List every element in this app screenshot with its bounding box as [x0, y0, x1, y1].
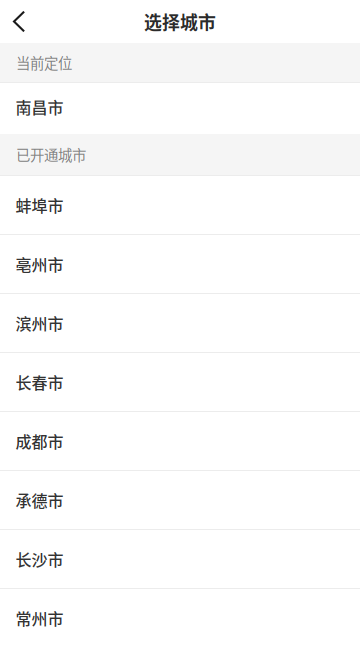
staticText: 当前定位	[16, 52, 72, 73]
staticText: 已开通城市	[16, 144, 86, 165]
staticText: 南昌市	[15, 95, 63, 118]
staticText: 亳州市	[15, 252, 63, 276]
staticText: 蚌埠市	[15, 193, 63, 217]
button[interactable]: 承德市	[0, 470, 360, 529]
button[interactable]: 长春市	[0, 352, 360, 411]
staticText: 长沙市	[15, 547, 63, 571]
button[interactable]: 常州市	[0, 588, 360, 647]
button[interactable]: 蚌埠市	[0, 175, 360, 234]
button[interactable]: Back	[0, 0, 44, 43]
button[interactable]: 长沙市	[0, 529, 360, 588]
staticText: 常州市	[15, 606, 63, 630]
button[interactable]: 亳州市	[0, 234, 360, 293]
staticText: 承德市	[15, 488, 63, 512]
button[interactable]: 成都市	[0, 411, 360, 470]
button[interactable]: 滨州市	[0, 293, 360, 352]
staticText: 长春市	[15, 370, 63, 394]
button[interactable]: 南昌市	[0, 82, 360, 134]
staticText: 滨州市	[15, 311, 63, 335]
staticText: 成都市	[15, 429, 63, 453]
staticText: 选择城市	[144, 9, 216, 34]
